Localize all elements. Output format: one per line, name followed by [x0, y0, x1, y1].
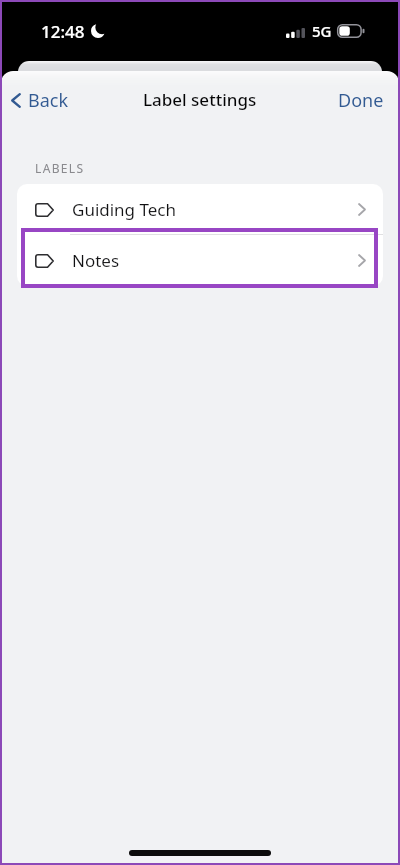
- staticText: 12:48: [41, 20, 85, 43]
- staticText: Notes: [72, 249, 120, 272]
- staticText: Guiding Tech: [72, 198, 177, 221]
- button[interactable]: Guiding Tech: [17, 184, 383, 235]
- staticText: Label settings: [143, 88, 257, 111]
- staticText: Back: [28, 88, 69, 113]
- staticText: LABELS: [35, 160, 85, 176]
- staticText: Done: [338, 88, 384, 113]
- button[interactable]: Done: [323, 78, 399, 122]
- button[interactable]: Notes: [17, 235, 383, 286]
- button[interactable]: Back: [1, 78, 77, 122]
- staticText: 5G: [312, 21, 332, 41]
